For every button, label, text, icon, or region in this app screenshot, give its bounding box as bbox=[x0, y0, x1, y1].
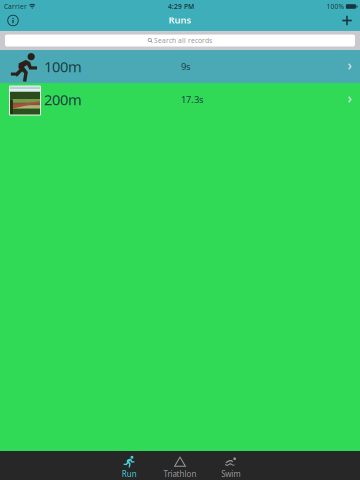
staticText: Search all records bbox=[154, 36, 212, 45]
button[interactable]: 200m bbox=[0, 83, 360, 116]
staticText: Carrier bbox=[4, 2, 27, 11]
staticText: 4:29 PM bbox=[168, 2, 194, 11]
staticText: 17.3s bbox=[181, 93, 203, 106]
button[interactable]: Swim bbox=[206, 451, 256, 480]
staticText: 100% bbox=[326, 2, 344, 11]
staticText: Runs bbox=[168, 14, 191, 26]
button[interactable]: Triathlon bbox=[155, 451, 205, 480]
staticText: Triathlon bbox=[163, 469, 196, 479]
staticText: 200m bbox=[44, 90, 82, 109]
staticText: Run bbox=[122, 469, 137, 479]
button[interactable]: Add run bbox=[334, 13, 360, 31]
button[interactable]: Run bbox=[104, 451, 154, 480]
button[interactable]: 100m bbox=[0, 50, 360, 83]
staticText: Swim bbox=[221, 469, 240, 479]
staticText: 100m bbox=[44, 57, 82, 76]
button[interactable]: Search all records bbox=[0, 31, 360, 50]
button[interactable]: Info bbox=[0, 13, 26, 31]
staticText: 9s bbox=[181, 60, 190, 73]
